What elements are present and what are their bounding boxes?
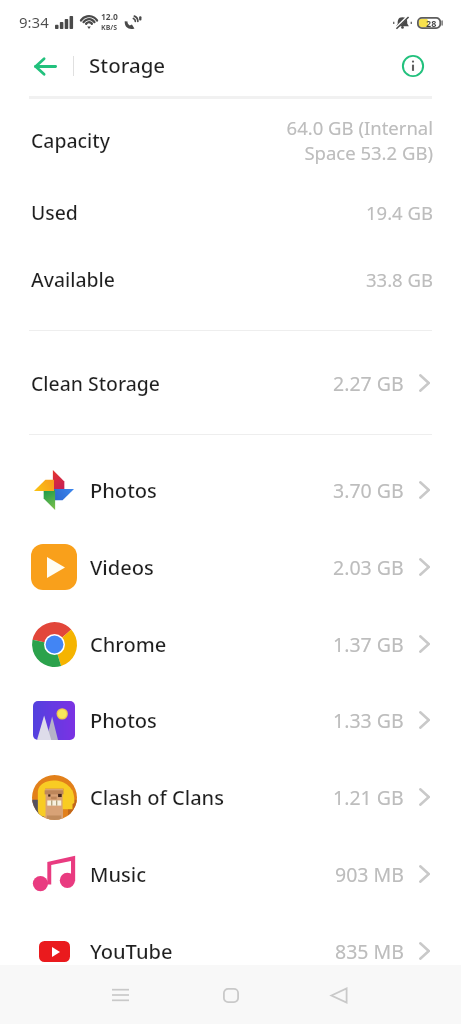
staticText: Capacity xyxy=(31,127,110,153)
button[interactable]: Clash of Clans xyxy=(0,759,461,835)
staticText: YouTube xyxy=(90,938,173,965)
staticText: 28 xyxy=(426,17,437,29)
staticText: 1.21 GB xyxy=(333,784,404,811)
button[interactable]: Back xyxy=(315,971,363,1019)
staticText: 903 MB xyxy=(335,861,404,888)
staticText: 835 MB xyxy=(335,938,404,965)
staticText: Videos xyxy=(90,554,154,581)
staticText: Available xyxy=(31,266,115,292)
button[interactable]: Photos xyxy=(0,452,461,528)
button[interactable]: Used xyxy=(0,177,461,247)
button[interactable]: Info xyxy=(396,49,430,83)
button[interactable]: Music xyxy=(0,836,461,912)
staticText: 2.03 GB xyxy=(333,554,404,581)
button[interactable]: Capacity xyxy=(0,105,461,175)
staticText: Chrome xyxy=(90,631,167,658)
button[interactable]: Back xyxy=(26,47,64,85)
staticText: Photos xyxy=(90,707,157,734)
button[interactable]: Recent apps xyxy=(96,971,144,1019)
staticText: Used xyxy=(31,199,78,225)
staticText: 1.37 GB xyxy=(333,631,404,658)
staticText: 2.27 GB xyxy=(333,370,404,397)
button[interactable]: Home xyxy=(207,971,255,1019)
button[interactable]: Videos xyxy=(0,529,461,605)
staticText: Music xyxy=(90,861,147,888)
staticText: 12.0 xyxy=(101,11,118,23)
staticText: Photos xyxy=(90,477,157,504)
button[interactable]: YouTube xyxy=(0,913,461,989)
staticText: 3.70 GB xyxy=(333,477,404,504)
button[interactable]: Available xyxy=(0,244,461,314)
staticText: 1.33 GB xyxy=(333,707,404,734)
button[interactable]: Clean Storage xyxy=(0,345,461,421)
staticText: 33.8 GB xyxy=(365,267,433,292)
staticText: 19.4 GB xyxy=(365,200,433,225)
staticText: 9:34 xyxy=(19,12,49,32)
staticText: Storage xyxy=(89,51,166,79)
button[interactable]: Photos xyxy=(0,682,461,758)
staticText: Clash of Clans xyxy=(90,784,224,811)
staticText: KB/S xyxy=(101,23,118,33)
staticText: Clean Storage xyxy=(31,370,160,396)
button[interactable]: Chrome xyxy=(0,606,461,682)
staticText: 64.0 GB (Internal Space 53.2 GB) xyxy=(286,115,433,166)
